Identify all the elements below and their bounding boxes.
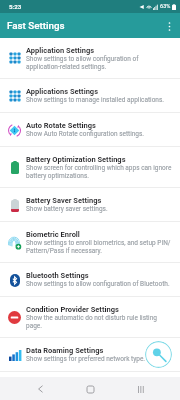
staticText: Bluetooth Settings <box>26 271 89 280</box>
staticText: Condition Provider Settings <box>26 305 119 314</box>
staticText: Battery Optimization Settings <box>26 155 126 164</box>
button[interactable]: Home <box>79 378 101 400</box>
staticText: Show battery saver settings. <box>26 205 108 213</box>
staticText: 63% <box>160 3 171 10</box>
button[interactable]: Battery Optimization Settings <box>0 147 180 188</box>
button[interactable]: More options <box>158 15 180 37</box>
staticText: Auto Rotate Settings <box>26 121 96 130</box>
staticText: Show settings to enroll biometrics, and … <box>26 239 172 254</box>
staticText: Show settings for preferred network type… <box>26 355 146 363</box>
button[interactable]: Data Roaming Settings <box>0 338 180 372</box>
staticText: Show the automatic do not disturb rule l… <box>26 314 172 329</box>
staticText: Battery Saver Settings <box>26 196 102 205</box>
button[interactable]: Applications Settings <box>0 79 180 113</box>
staticText: Show settings to manage installed applic… <box>26 96 165 104</box>
staticText: Show settings to allow configuration of … <box>26 55 172 70</box>
button[interactable]: Auto Rotate Settings <box>0 113 180 147</box>
staticText: Biometric Enroll <box>26 230 80 239</box>
button[interactable]: Back <box>29 378 51 400</box>
button[interactable]: Biometric Enroll <box>0 222 180 263</box>
button[interactable]: Bluetooth Settings <box>0 263 180 297</box>
button[interactable]: Battery Saver Settings <box>0 188 180 222</box>
button[interactable]: Search <box>145 341 172 368</box>
button[interactable]: Application Settings <box>0 38 180 79</box>
staticText: Show screen for controlling which apps c… <box>26 164 172 179</box>
staticText: Application Settings <box>26 46 95 55</box>
staticText: Show settings to allow configuration of … <box>26 280 170 288</box>
staticText: Data Roaming Settings <box>26 346 104 355</box>
staticText: Show Auto Rotate configuration settings. <box>26 130 145 138</box>
button[interactable]: Condition Provider Settings <box>0 297 180 338</box>
staticText: Fast Settings <box>7 20 65 31</box>
button[interactable]: Recent apps <box>130 378 152 400</box>
staticText: 5:23 <box>9 3 22 10</box>
staticText: Applications Settings <box>26 87 98 96</box>
